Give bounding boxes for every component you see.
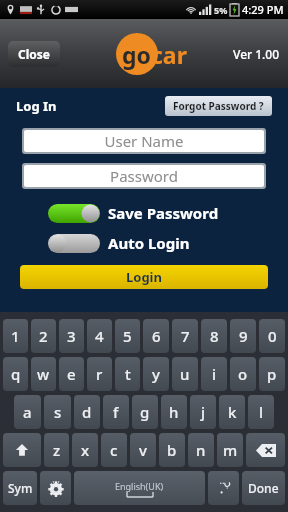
button[interactable]: User Name — [24, 130, 264, 152]
button[interactable]: h — [161, 395, 187, 429]
button[interactable]: v — [130, 433, 156, 467]
button[interactable]: Password — [24, 165, 264, 187]
button[interactable]: 1 — [3, 319, 28, 353]
button[interactable]: n — [188, 433, 214, 467]
staticText: 4:29 PM — [242, 2, 284, 17]
button[interactable]: Keyboard settings — [40, 471, 71, 505]
staticText: e — [67, 364, 76, 384]
staticText: h — [169, 402, 179, 422]
staticText: k — [228, 402, 237, 422]
button[interactable]: p — [259, 357, 285, 391]
staticText: p — [267, 364, 277, 384]
staticText: u — [180, 364, 190, 384]
button[interactable]: 9 — [230, 319, 256, 353]
staticText: j — [201, 402, 206, 422]
button[interactable]: 7 — [172, 319, 198, 353]
staticText: Log In — [16, 97, 57, 115]
staticText: English(UK) — [115, 480, 164, 492]
button[interactable]: g — [132, 395, 158, 429]
button[interactable]: 5 — [115, 319, 140, 353]
staticText: a — [23, 402, 32, 422]
staticText: 6 — [152, 326, 161, 346]
staticText: 5 — [123, 326, 132, 346]
staticText: m — [223, 440, 238, 460]
staticText: t — [125, 364, 131, 384]
staticText: User Name — [104, 131, 184, 151]
staticText: 5% — [214, 4, 228, 16]
button[interactable]: e — [59, 357, 84, 391]
staticText: go — [122, 39, 151, 70]
staticText: b — [167, 440, 177, 460]
button[interactable]: u — [172, 357, 198, 391]
staticText: d — [82, 402, 92, 422]
staticText: 9 — [239, 326, 248, 346]
staticText: 3 — [67, 326, 76, 346]
button[interactable]: m — [217, 433, 243, 467]
staticText: s — [54, 402, 62, 422]
staticText: Sym — [8, 480, 33, 496]
button[interactable]: z — [44, 433, 69, 467]
staticText: z — [53, 440, 61, 460]
button[interactable]: Shift — [3, 433, 41, 467]
staticText: Close — [18, 46, 50, 62]
staticText: 1 — [11, 326, 20, 346]
button[interactable]: s — [44, 395, 71, 429]
button[interactable]: Close — [8, 41, 60, 67]
staticText: v — [139, 440, 147, 460]
button[interactable]: 4 — [87, 319, 112, 353]
button[interactable]: Backspace — [246, 433, 285, 467]
button[interactable]: 3 — [59, 319, 84, 353]
staticText: y — [152, 364, 160, 384]
staticText: Login — [126, 268, 162, 286]
button[interactable]: 6 — [143, 319, 169, 353]
button[interactable]: English(UK) — [74, 471, 205, 505]
staticText: x — [81, 440, 90, 460]
button[interactable]: 0 — [259, 319, 285, 353]
button[interactable]: 2 — [31, 319, 56, 353]
button[interactable]: Sym — [3, 471, 37, 505]
button[interactable]: Login — [20, 265, 268, 289]
staticText: g — [140, 402, 150, 422]
staticText: n — [196, 440, 206, 460]
button[interactable]: t — [115, 357, 140, 391]
staticText: 4 — [95, 326, 104, 346]
staticText: Ver 1.00 — [233, 46, 280, 62]
button[interactable]: d — [74, 395, 100, 429]
button[interactable]: r — [87, 357, 112, 391]
staticText: Password — [110, 166, 178, 186]
button[interactable]: c — [101, 433, 127, 467]
staticText: q — [11, 364, 21, 384]
button[interactable]: x — [72, 433, 98, 467]
staticText: w — [37, 364, 50, 384]
button[interactable]: w — [31, 357, 56, 391]
button[interactable]: Auto Login — [48, 233, 288, 253]
staticText: 7 — [181, 326, 190, 346]
staticText: 0 — [268, 326, 277, 346]
staticText: Forgot Password ? — [173, 99, 264, 113]
staticText: i — [212, 364, 217, 384]
staticText: f — [113, 402, 119, 422]
staticText: r — [96, 364, 103, 384]
button[interactable]: 8 — [201, 319, 227, 353]
staticText: c — [110, 440, 118, 460]
button[interactable]: Save Password — [48, 203, 288, 223]
button[interactable]: q — [3, 357, 28, 391]
button[interactable]: f — [103, 395, 129, 429]
button[interactable]: Forgot Password ? — [165, 96, 272, 116]
button[interactable]: Done — [242, 471, 285, 505]
button[interactable]: o — [230, 357, 256, 391]
button[interactable]: a — [14, 395, 41, 429]
staticText: l — [259, 402, 264, 422]
button[interactable]: i — [201, 357, 227, 391]
staticText: 2 — [39, 326, 48, 346]
button[interactable]: b — [159, 433, 185, 467]
button[interactable]: j — [190, 395, 216, 429]
staticText: Save Password — [108, 203, 219, 223]
button[interactable]: Punctuation — [208, 471, 239, 505]
button[interactable]: k — [219, 395, 245, 429]
staticText: 8 — [210, 326, 219, 346]
button[interactable]: y — [143, 357, 169, 391]
button[interactable]: l — [248, 395, 274, 429]
staticText: Auto Login — [108, 233, 190, 253]
staticText: Done — [248, 480, 279, 496]
